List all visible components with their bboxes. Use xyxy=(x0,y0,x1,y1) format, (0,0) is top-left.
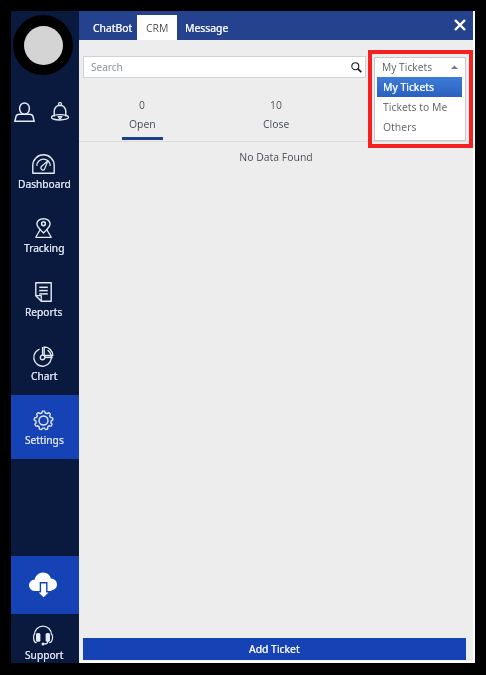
button[interactable]: Support xyxy=(9,625,77,663)
staticText: No Data Found xyxy=(79,150,473,164)
button[interactable]: CRM xyxy=(137,15,177,40)
staticText: Tickets to Me xyxy=(383,100,448,114)
button[interactable]: Profile photo xyxy=(13,15,73,75)
button[interactable]: My Tickets xyxy=(374,57,466,77)
staticText: Settings xyxy=(25,433,64,447)
staticText: Add Ticket xyxy=(249,642,300,656)
staticText: Others xyxy=(383,120,417,134)
staticText: Open xyxy=(129,117,156,131)
button[interactable]: Account xyxy=(13,101,35,123)
staticText: Dashboard xyxy=(18,177,71,191)
staticText: My Tickets xyxy=(382,60,433,74)
staticText: 0 xyxy=(139,98,145,112)
button[interactable]: 0 xyxy=(102,97,182,142)
button[interactable]: My Tickets xyxy=(374,77,466,97)
button[interactable]: Dashboard xyxy=(11,139,79,203)
staticText: Reports xyxy=(25,305,63,319)
staticText: Close xyxy=(263,117,290,131)
button[interactable]: Message xyxy=(178,15,236,40)
button[interactable]: ChatBot xyxy=(86,15,140,40)
button[interactable]: Close xyxy=(449,14,471,36)
button[interactable]: Tracking xyxy=(11,203,79,267)
button[interactable]: Tickets to Me xyxy=(374,97,466,117)
staticText: Search xyxy=(91,60,123,74)
button[interactable]: 10 xyxy=(236,97,316,142)
staticText: 10 xyxy=(270,98,282,112)
button[interactable]: Reports xyxy=(11,267,79,331)
staticText: CRM xyxy=(146,21,169,35)
staticText: Chart xyxy=(31,369,58,383)
staticText: ChatBot xyxy=(93,21,133,35)
button[interactable]: Chart xyxy=(11,331,79,395)
button[interactable]: Notifications xyxy=(49,101,71,123)
button[interactable]: Add Ticket xyxy=(83,638,466,660)
staticText: Message xyxy=(185,21,229,35)
staticText: Tracking xyxy=(24,241,65,255)
staticText: Support xyxy=(25,648,64,662)
staticText: My Tickets xyxy=(383,80,435,94)
button[interactable]: Search xyxy=(83,56,366,78)
button[interactable]: Cloud download xyxy=(11,556,79,614)
button[interactable]: Settings xyxy=(11,395,79,459)
button[interactable]: Others xyxy=(374,117,466,137)
